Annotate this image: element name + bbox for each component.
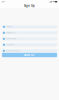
staticText: 9:41 [2,1,5,3]
button[interactable]: Confirm Password [2,49,57,52]
staticText: Email Address [6,32,16,34]
button[interactable]: Full Name [2,25,57,28]
button[interactable]: Phone Number [2,37,57,40]
staticText: Sign Up [24,4,35,7]
button[interactable]: SIGN UP [2,53,57,57]
staticText: Phone Number [6,38,17,40]
staticText: Password [6,44,14,46]
staticText: SIGN UP [24,53,35,57]
staticText: Confirm Password [6,50,20,52]
button[interactable]: Password [2,43,57,46]
staticText: wifi [52,1,54,3]
staticText: Full Name [6,26,12,28]
button[interactable]: Email Address [2,31,57,34]
